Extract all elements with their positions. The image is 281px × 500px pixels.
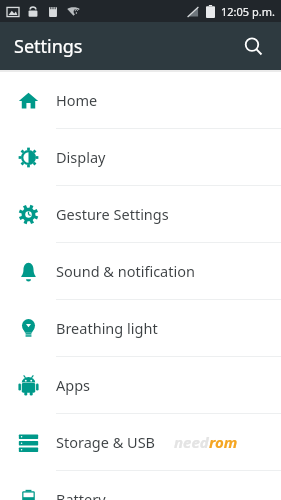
staticText: 12:05 p.m. (221, 4, 275, 19)
staticText: Storage & USB (56, 432, 156, 452)
staticText: Settings (14, 34, 83, 59)
staticText: rom (209, 432, 238, 452)
staticText: Display (56, 147, 106, 167)
staticText: Battery (56, 489, 106, 500)
button[interactable]: Display (0, 129, 281, 185)
button[interactable]: Battery (0, 471, 281, 500)
button[interactable]: Storage & USB (0, 414, 281, 470)
button[interactable]: Home (0, 72, 281, 128)
button[interactable]: Apps (0, 357, 281, 413)
button[interactable]: Breathing light (0, 300, 281, 356)
staticText: Apps (56, 375, 91, 395)
staticText: need (174, 432, 209, 452)
staticText: Breathing light (56, 318, 158, 338)
staticText: Sound & notification (56, 261, 195, 281)
staticText: Home (56, 90, 98, 110)
button[interactable]: Sound & notification (0, 243, 281, 299)
button[interactable]: Gesture Settings (0, 186, 281, 242)
button[interactable]: Search (233, 26, 273, 66)
staticText: Gesture Settings (56, 204, 169, 224)
